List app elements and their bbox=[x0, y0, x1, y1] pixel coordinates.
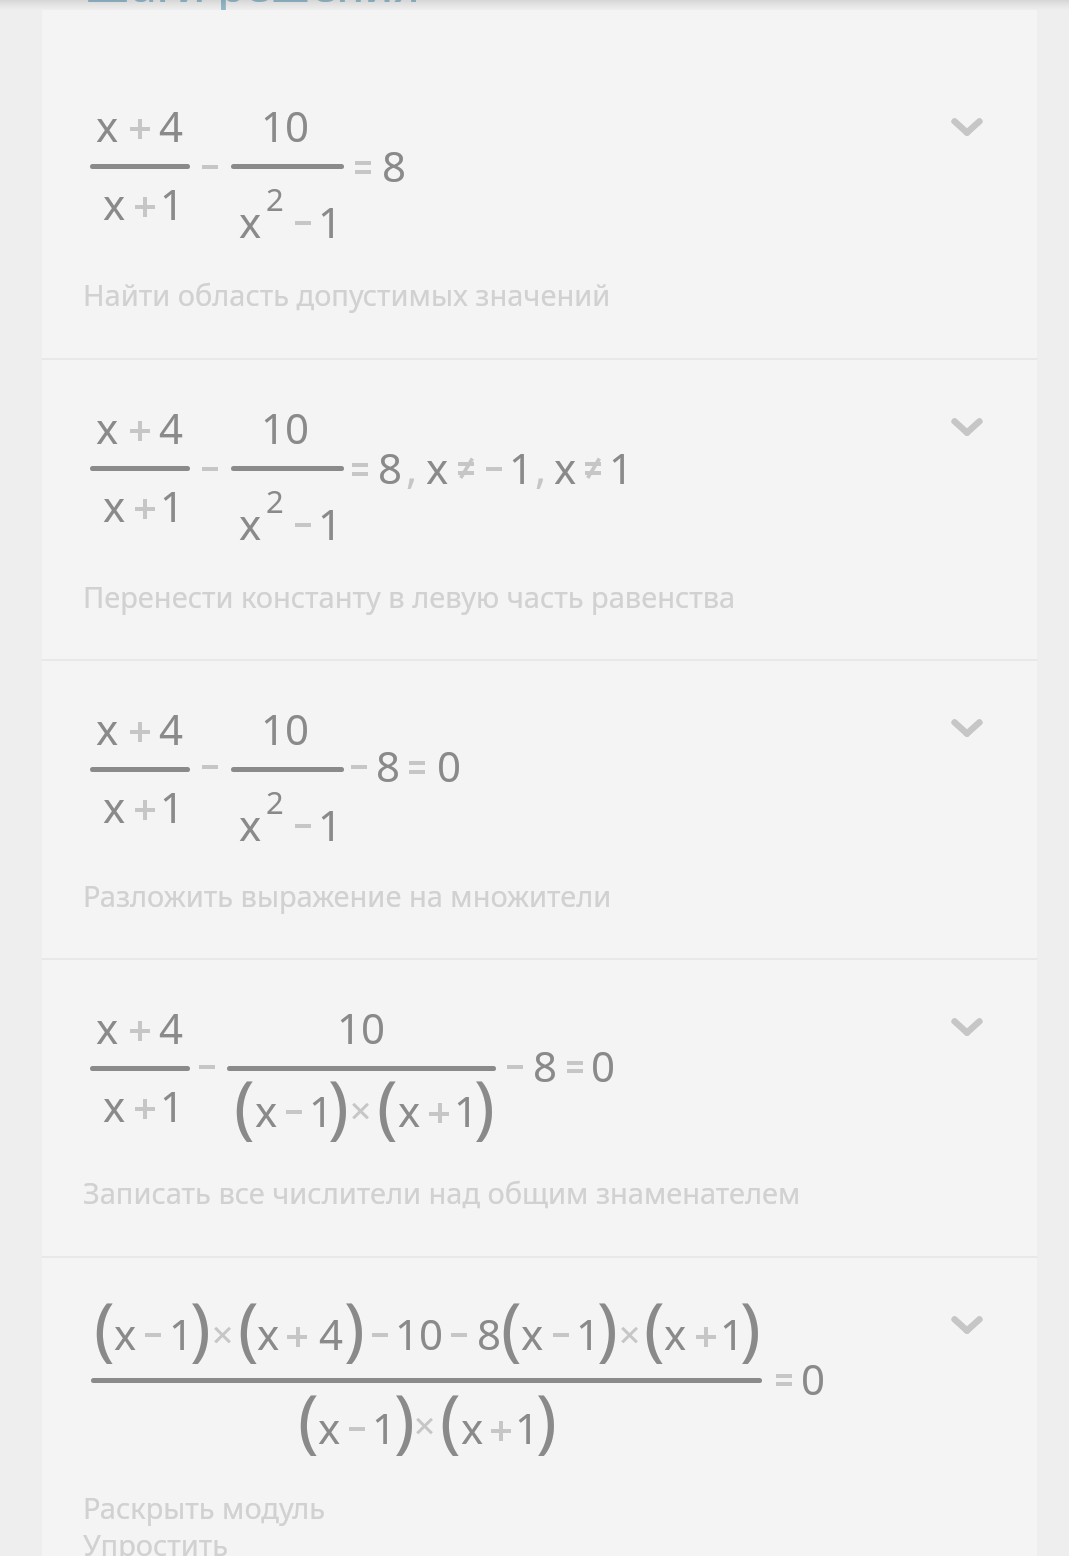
staticText: ( bbox=[238, 1279, 259, 1373]
staticText: 8 bbox=[533, 1037, 558, 1094]
button[interactable] bbox=[42, 661, 1037, 958]
staticText: × bbox=[619, 1308, 641, 1358]
staticText: 1 bbox=[318, 193, 343, 250]
staticText: Упростить bbox=[83, 1525, 229, 1556]
staticText: x bbox=[398, 1082, 421, 1139]
other: Expand step bbox=[938, 1296, 996, 1354]
staticText: Раскрыть модуль bbox=[83, 1488, 326, 1527]
staticText: x bbox=[521, 1305, 544, 1362]
staticText: × bbox=[414, 1399, 436, 1449]
staticText: ) bbox=[190, 1279, 211, 1373]
staticText: ) bbox=[474, 1057, 495, 1151]
staticText: 1 bbox=[515, 1399, 540, 1456]
staticText: ) bbox=[344, 1279, 365, 1373]
staticText: 1 bbox=[576, 1305, 601, 1362]
staticText: x bbox=[103, 1077, 126, 1134]
staticText: 10 bbox=[261, 399, 310, 456]
staticText: x bbox=[255, 1082, 278, 1139]
staticText: 8 bbox=[378, 439, 403, 496]
staticText: x bbox=[318, 1399, 341, 1456]
staticText: Записать все числители над общим знамена… bbox=[83, 1173, 801, 1212]
staticText: 0 bbox=[801, 1350, 826, 1407]
staticText: 2 bbox=[266, 178, 284, 220]
staticText: 2 bbox=[266, 480, 284, 522]
staticText: x bbox=[103, 175, 126, 232]
staticText: x bbox=[114, 1305, 137, 1362]
staticText: 8 bbox=[382, 137, 407, 194]
staticText: 1 bbox=[720, 1305, 745, 1362]
staticText: ) bbox=[740, 1279, 761, 1373]
staticText: x bbox=[239, 796, 262, 853]
staticText: ( bbox=[94, 1279, 115, 1373]
staticText: x bbox=[554, 439, 577, 496]
staticText: 1 bbox=[309, 1082, 334, 1139]
staticText: × bbox=[212, 1308, 234, 1358]
staticText: 0 bbox=[437, 737, 462, 794]
button[interactable] bbox=[42, 12, 1037, 358]
staticText: 4 bbox=[159, 399, 184, 456]
staticText: 1 bbox=[509, 439, 534, 496]
staticText: ) bbox=[394, 1371, 415, 1465]
staticText: , bbox=[406, 439, 418, 496]
staticText: 2 bbox=[266, 781, 284, 823]
staticText: 1 bbox=[454, 1082, 479, 1139]
other: Expand step bbox=[938, 98, 996, 156]
staticText: ) bbox=[536, 1371, 557, 1465]
button[interactable] bbox=[42, 360, 1037, 659]
staticText: Шаги решения bbox=[84, 0, 420, 15]
staticText: 8 bbox=[477, 1305, 502, 1362]
staticText: ( bbox=[644, 1279, 665, 1373]
staticText: x bbox=[664, 1305, 687, 1362]
staticText: Разложить выражение на множители bbox=[83, 876, 612, 915]
staticText: 1 bbox=[160, 477, 185, 534]
staticText: 0 bbox=[591, 1037, 616, 1094]
staticText: ) bbox=[328, 1057, 349, 1151]
staticText: x bbox=[426, 439, 449, 496]
staticText: x bbox=[103, 778, 126, 835]
staticText: x bbox=[96, 399, 119, 456]
staticText: x bbox=[96, 97, 119, 154]
staticText: x bbox=[103, 477, 126, 534]
staticText: ( bbox=[440, 1371, 461, 1465]
staticText: 10 bbox=[337, 999, 386, 1056]
staticText: 4 bbox=[159, 97, 184, 154]
button[interactable] bbox=[42, 960, 1037, 1256]
staticText: x bbox=[96, 700, 119, 757]
other: Expand step bbox=[938, 998, 996, 1056]
staticText: x bbox=[257, 1305, 280, 1362]
staticText: Найти область допустимых значений bbox=[83, 275, 611, 314]
staticText: 10 bbox=[261, 700, 310, 757]
staticText: 1 bbox=[372, 1399, 397, 1456]
staticText: 4 bbox=[319, 1305, 344, 1362]
staticText: ( bbox=[501, 1279, 522, 1373]
staticText: 1 bbox=[169, 1305, 194, 1362]
staticText: , bbox=[535, 439, 547, 496]
staticText: x bbox=[239, 193, 262, 250]
staticText: 10 bbox=[395, 1305, 444, 1362]
staticText: 1 bbox=[160, 175, 185, 232]
button[interactable] bbox=[42, 1258, 1037, 1556]
staticText: 8 bbox=[376, 737, 401, 794]
staticText: 1 bbox=[160, 778, 185, 835]
staticText: ( bbox=[377, 1057, 398, 1151]
staticText: ) bbox=[597, 1279, 618, 1373]
staticText: ( bbox=[234, 1057, 255, 1151]
staticText: 1 bbox=[160, 1077, 185, 1134]
staticText: x bbox=[96, 999, 119, 1056]
staticText: × bbox=[350, 1084, 372, 1134]
staticText: x bbox=[239, 495, 262, 552]
staticText: 4 bbox=[159, 999, 184, 1056]
staticText: 4 bbox=[159, 700, 184, 757]
staticText: ( bbox=[298, 1371, 319, 1465]
staticText: 1 bbox=[318, 495, 343, 552]
staticText: 10 bbox=[261, 97, 310, 154]
staticText: Перенести константу в левую часть равенс… bbox=[83, 577, 736, 616]
staticText: 1 bbox=[318, 796, 343, 853]
staticText: x bbox=[461, 1399, 484, 1456]
other: Expand step bbox=[938, 398, 996, 456]
staticText: 1 bbox=[609, 439, 634, 496]
other: Expand step bbox=[938, 699, 996, 757]
